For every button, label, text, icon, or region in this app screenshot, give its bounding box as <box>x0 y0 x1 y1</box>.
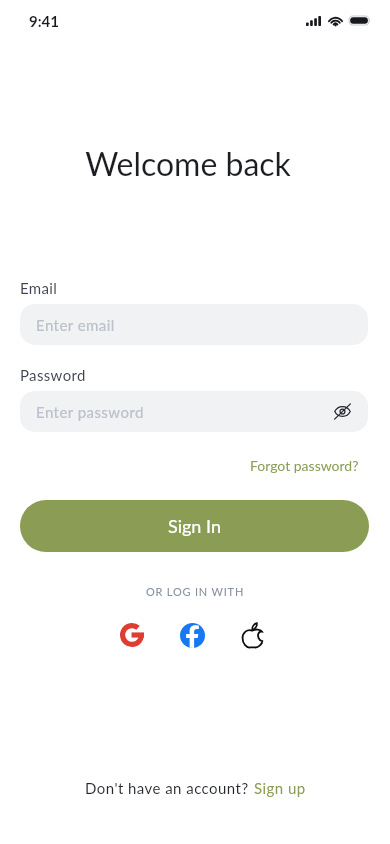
button[interactable]: Sign in with Apple <box>230 613 274 657</box>
button[interactable]: Forgot password? <box>240 451 369 480</box>
button[interactable]: Sign up <box>254 779 306 797</box>
button[interactable]: Enter password <box>20 391 368 432</box>
staticText: Welcome back <box>0 144 383 182</box>
button[interactable]: Sign in with Facebook <box>170 613 214 657</box>
button[interactable]: Enter email <box>20 304 368 345</box>
other: Wi-Fi <box>328 16 343 26</box>
staticText: OR LOG IN WITH <box>0 585 390 598</box>
staticText: Sign In <box>168 515 221 537</box>
staticText: Enter email <box>36 316 115 334</box>
staticText: 9:41 <box>29 12 59 30</box>
button[interactable]: Show password <box>334 403 351 420</box>
button[interactable]: Sign in with Google <box>110 613 154 657</box>
staticText: Password <box>20 366 86 384</box>
other: Cellular signal <box>306 16 321 26</box>
staticText: Don't have an account? <box>85 779 249 797</box>
other: Battery <box>349 16 370 25</box>
staticText: Enter password <box>36 403 144 421</box>
staticText: Email <box>20 279 58 297</box>
button[interactable]: Sign In <box>20 500 369 552</box>
